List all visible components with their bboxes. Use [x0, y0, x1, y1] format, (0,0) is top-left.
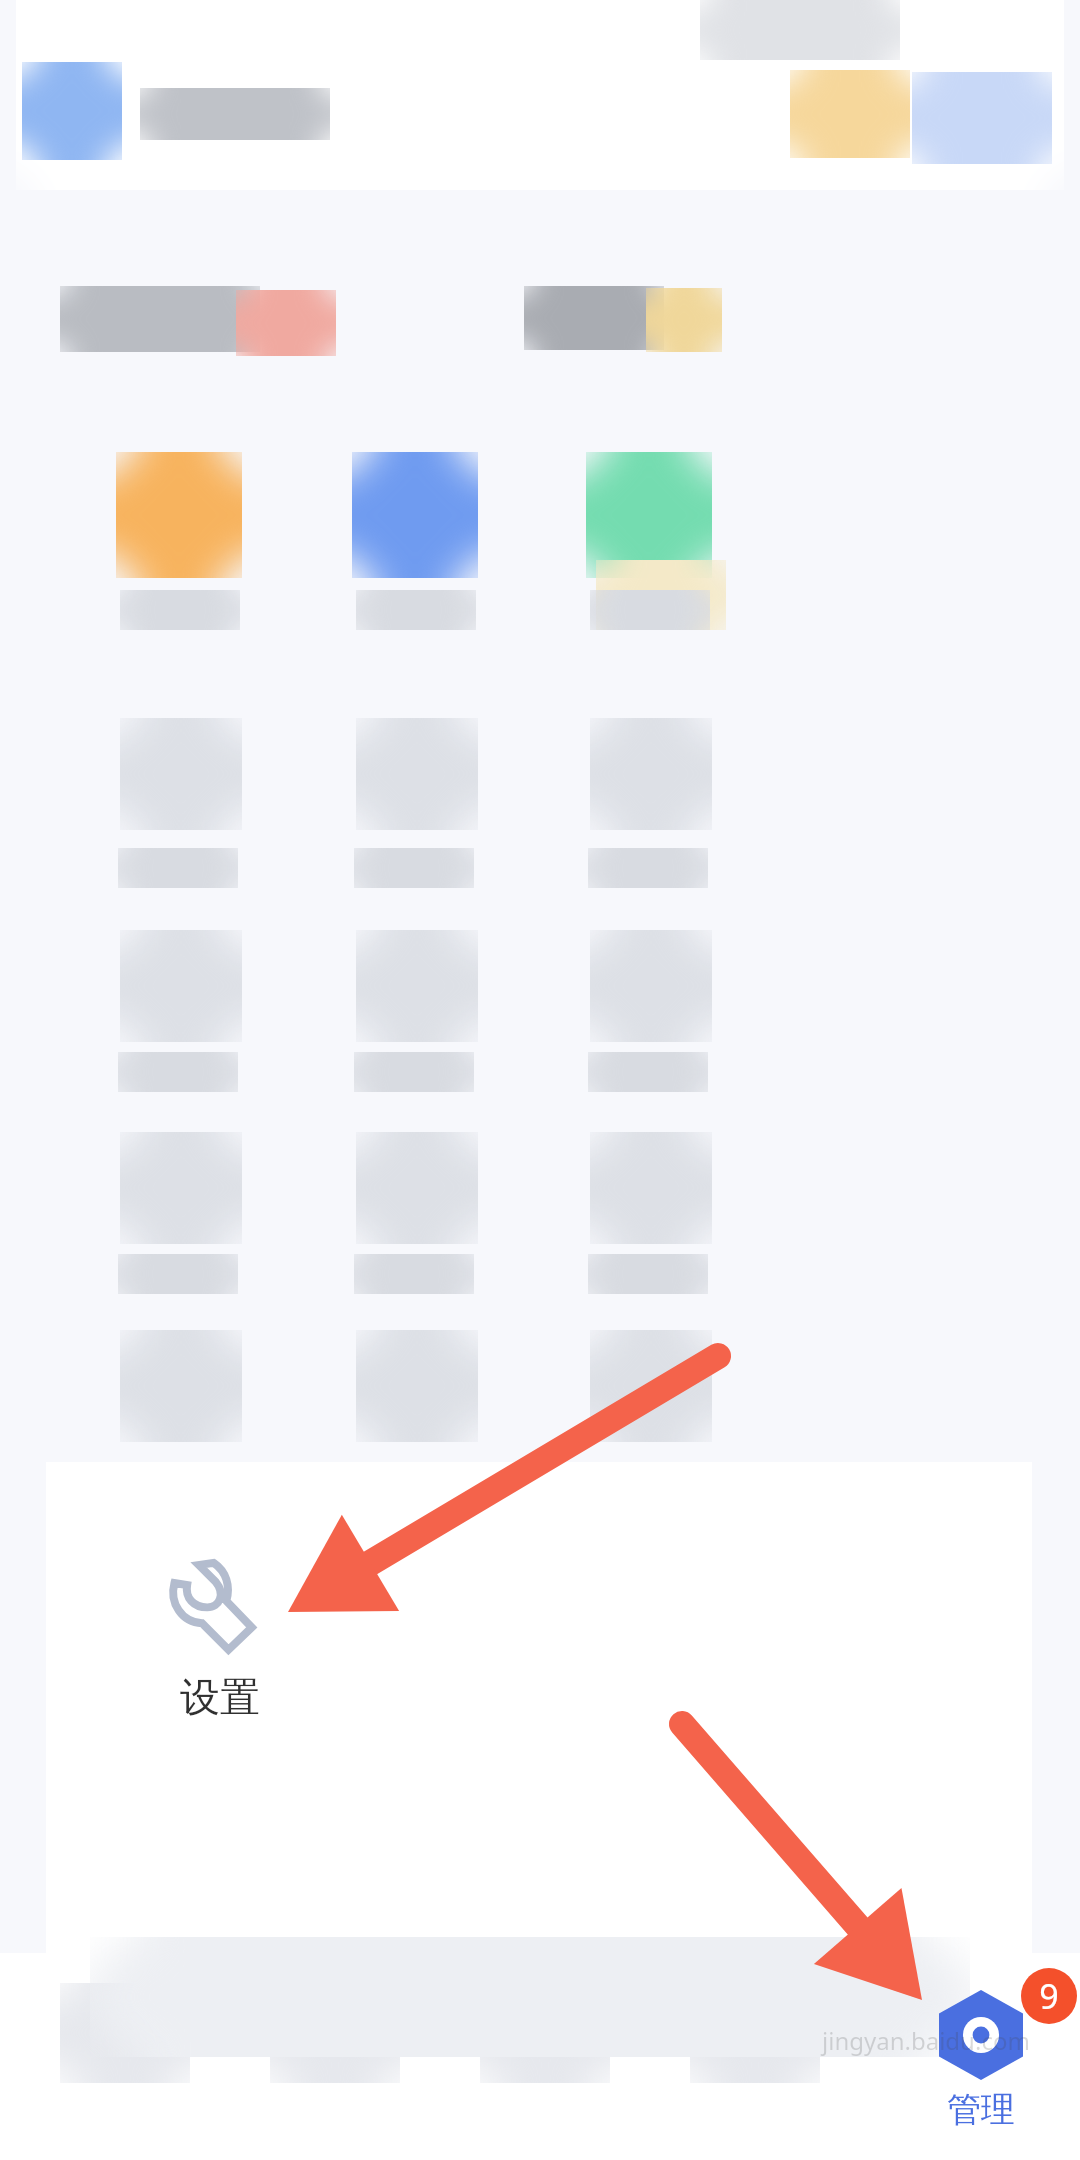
button[interactable]: 设置 — [140, 1548, 300, 1758]
staticText: 9 — [1039, 1973, 1059, 2019]
button[interactable]: 管理 — [906, 1990, 1056, 2150]
other: 设置 — [167, 1548, 273, 1654]
staticText: 设置 — [180, 1672, 260, 1722]
staticText: 管理 — [947, 2088, 1015, 2131]
staticText: jingyan.baidu.com — [822, 2024, 1030, 2057]
other: 管理 — [939, 1990, 1023, 2080]
